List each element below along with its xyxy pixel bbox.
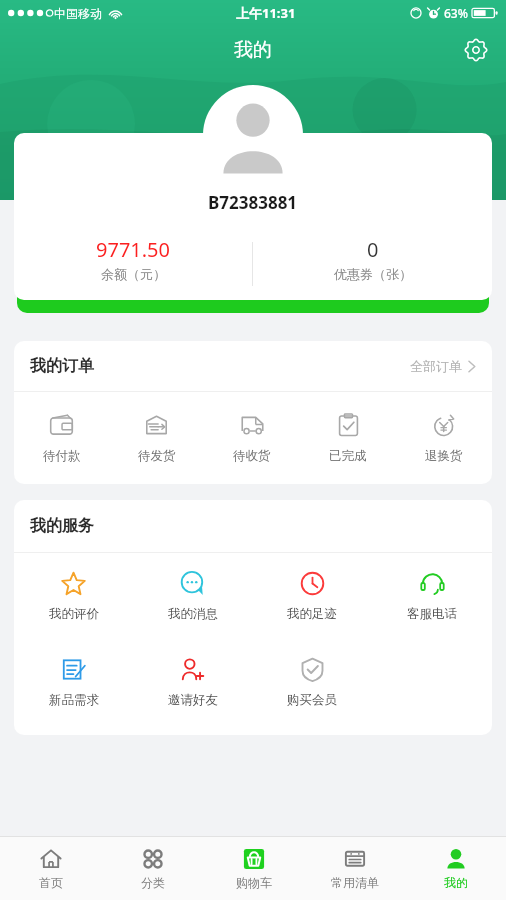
button[interactable]: 头像 [203,85,303,185]
button[interactable]: 购物车 [203,837,304,900]
button[interactable]: 退换货 [396,392,492,484]
button[interactable]: 我的服务 [14,500,492,552]
staticText: 待付款 [43,448,81,464]
button[interactable]: 我的评价 [14,553,133,639]
button[interactable]: 设置 [459,33,493,67]
staticText: 新品需求 [49,692,99,708]
button[interactable]: B72383881 [14,133,492,300]
button[interactable]: 新品需求 [14,639,133,725]
staticText: 63% [444,5,468,21]
button[interactable]: 我的 [405,837,506,900]
staticText: 常用清单 [331,875,379,890]
staticText: 中国移动 [54,6,102,21]
button[interactable]: 购买会员 [252,639,372,725]
button[interactable]: 9771.50 [14,236,252,292]
staticText: 9771.50 [96,236,170,263]
staticText: 退换货 [425,448,463,464]
staticText: 0 [367,236,379,263]
staticText: B72383881 [208,191,298,214]
staticText: 我的评价 [49,606,99,622]
staticText: 待收货 [233,448,271,464]
staticText: 邀请好友 [168,692,218,708]
staticText: 分类 [141,875,165,890]
staticText: 我的 [444,875,468,890]
staticText: 待发货 [138,448,176,464]
staticText: 我的 [234,38,272,62]
button[interactable]: 客服电话 [372,553,492,639]
button[interactable]: 首页 [0,837,102,900]
staticText: 已完成 [329,448,367,464]
staticText: 我的服务 [30,516,94,536]
button[interactable]: 分类 [102,837,203,900]
staticText: 我的订单 [30,356,94,376]
staticText: 优惠券（张） [334,266,412,282]
button[interactable]: 待收货 [204,392,300,484]
staticText: 我的足迹 [287,606,337,622]
staticText: 全部订单 [410,358,462,374]
button[interactable]: 我的足迹 [252,553,372,639]
staticText: 购买会员 [287,692,337,708]
staticText: 首页 [39,875,63,890]
button[interactable]: 邀请好友 [133,639,252,725]
staticText: 我的消息 [168,606,218,622]
button[interactable]: 常用清单 [304,837,405,900]
staticText: 上午11:31 [236,4,296,22]
staticText: 购物车 [236,875,272,890]
button[interactable]: 我的消息 [133,553,252,639]
button[interactable]: 0 [253,236,492,292]
button[interactable]: 已完成 [300,392,396,484]
staticText: 余额（元） [101,266,166,282]
button[interactable]: 待发货 [109,392,204,484]
button[interactable]: 我的订单 [14,341,492,391]
button[interactable]: 待付款 [14,392,109,484]
staticText: 客服电话 [407,606,457,622]
